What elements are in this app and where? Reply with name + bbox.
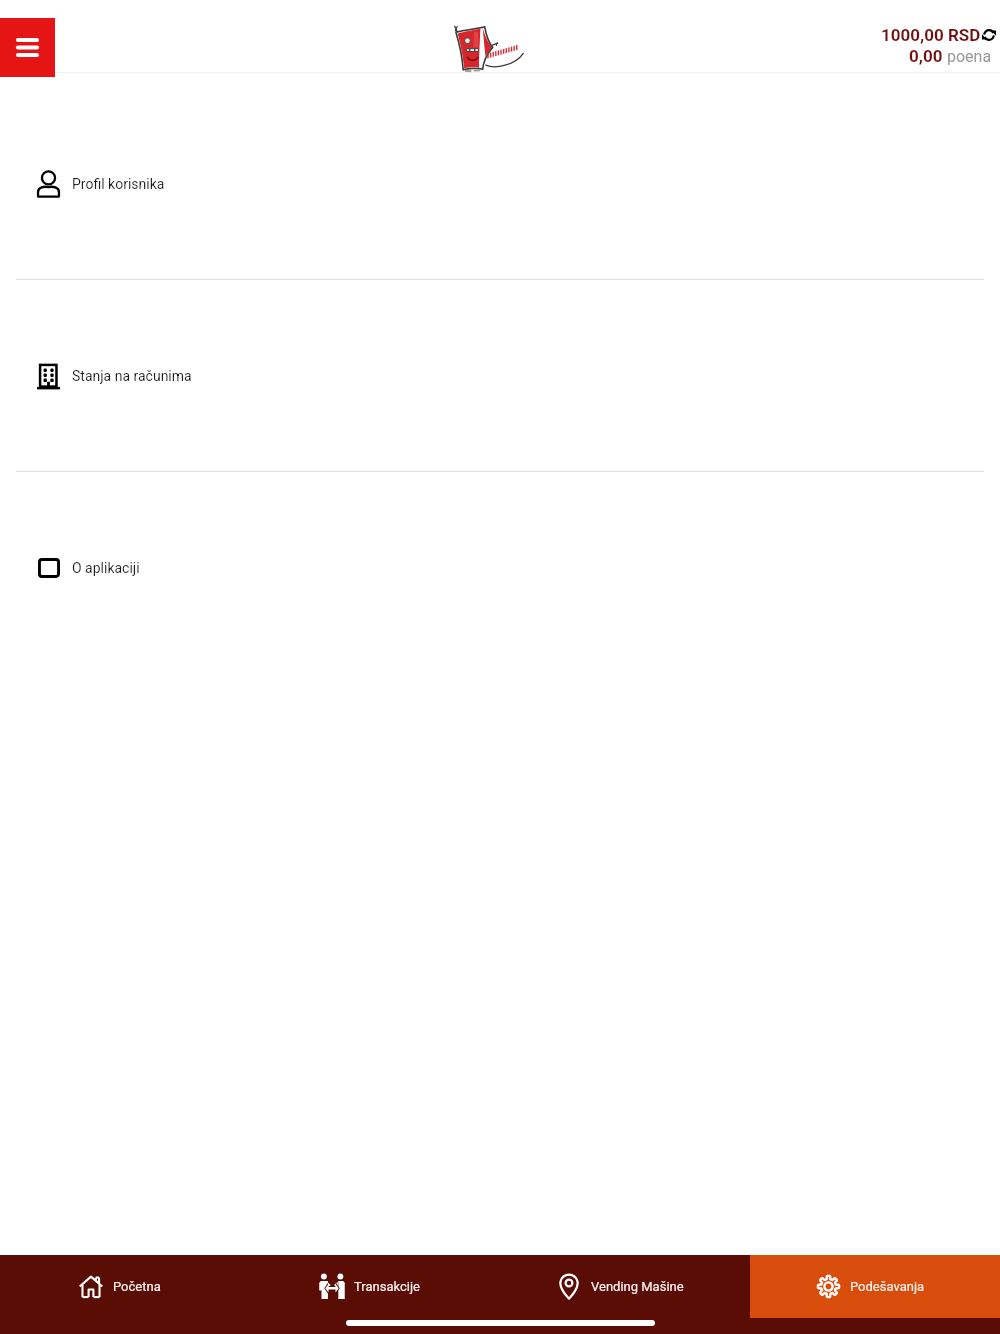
button[interactable]: Refresh balance	[981, 27, 997, 43]
button[interactable]: Stanja na računima	[0, 280, 1000, 471]
staticText: 0,00	[909, 46, 943, 66]
button[interactable]: Transakcije	[250, 1255, 500, 1318]
staticText: Vending Mašine	[591, 1279, 684, 1294]
staticText: Profil korisnika	[72, 176, 165, 192]
button[interactable]: Podešavanja	[750, 1255, 1000, 1318]
button[interactable]: Početna	[0, 1255, 250, 1318]
button[interactable]: Vending Mašine	[500, 1255, 750, 1318]
staticText: Transakcije	[354, 1279, 420, 1294]
staticText: Podešavanja	[850, 1279, 925, 1294]
staticText: 1000,00 RSD	[881, 25, 981, 45]
staticText: O aplikaciji	[72, 560, 140, 576]
staticText: poena	[947, 47, 992, 66]
staticText: Stanja na računima	[72, 368, 192, 384]
button[interactable]: Profil korisnika	[0, 88, 1000, 279]
button[interactable]: O aplikaciji	[0, 472, 1000, 663]
staticText: Početna	[113, 1279, 161, 1294]
button[interactable]: Open navigation menu	[0, 18, 55, 77]
